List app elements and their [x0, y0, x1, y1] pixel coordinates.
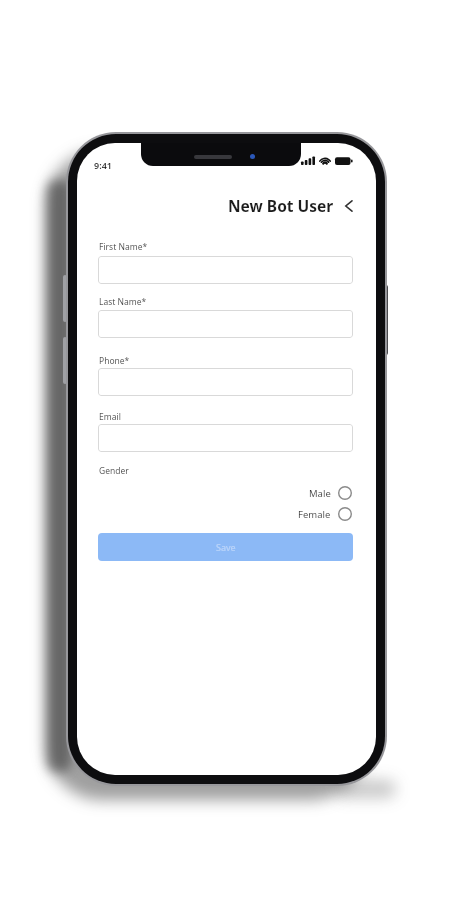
- staticText: Save: [216, 541, 236, 553]
- staticText: Email: [99, 411, 121, 423]
- button[interactable]: [345, 200, 352, 212]
- button[interactable]: Female: [298, 507, 352, 521]
- staticText: 9:41: [94, 159, 112, 171]
- staticText: Phone*: [99, 355, 130, 367]
- button[interactable]: New Bot User: [228, 195, 352, 216]
- button[interactable]: Male: [309, 486, 352, 500]
- button[interactable]: [98, 256, 353, 284]
- staticText: First Name*: [99, 241, 148, 253]
- button[interactable]: [98, 368, 353, 396]
- staticText: Female: [298, 508, 331, 521]
- button[interactable]: Save: [98, 533, 353, 561]
- button[interactable]: [98, 310, 353, 338]
- button[interactable]: [98, 424, 353, 452]
- staticText: Last Name*: [99, 296, 147, 308]
- staticText: Gender: [99, 465, 129, 477]
- staticText: New Bot User: [228, 195, 334, 216]
- staticText: Male: [309, 487, 331, 500]
